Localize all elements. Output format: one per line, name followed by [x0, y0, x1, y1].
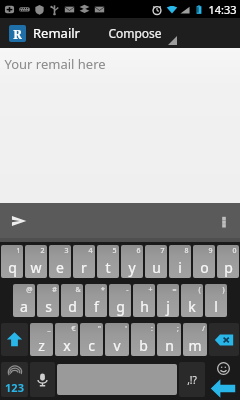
staticText: o: [200, 258, 209, 277]
staticText: s: [45, 297, 52, 316]
staticText: z: [38, 336, 45, 355]
button[interactable]: ': [105, 323, 129, 356]
staticText: 3: [64, 246, 69, 256]
staticText: 0: [232, 246, 237, 256]
button[interactable]: Send: [6, 208, 32, 234]
staticText: ,!?: [187, 373, 197, 387]
staticText: ): [222, 285, 225, 295]
button[interactable]: Enter: [206, 377, 240, 400]
staticText: x: [63, 336, 71, 355]
button[interactable]: 3: [49, 245, 71, 278]
staticText: ": [98, 324, 101, 334]
button[interactable]: #: [37, 284, 59, 317]
button[interactable]: Compose: [108, 25, 172, 41]
staticText: f: [94, 297, 99, 316]
staticText: m: [188, 336, 202, 355]
staticText: €: [71, 324, 76, 334]
button[interactable]: Shift: [1, 323, 28, 356]
staticText: d: [68, 297, 77, 316]
staticText: u: [152, 258, 161, 277]
staticText: n: [165, 336, 174, 355]
button[interactable]: 7: [145, 245, 167, 278]
staticText: 5: [112, 246, 117, 256]
button[interactable]: _: [30, 323, 53, 356]
button[interactable]: Your remail here: [0, 48, 240, 203]
staticText: ': [125, 324, 127, 334]
staticText: 2: [40, 246, 45, 256]
button[interactable]: Punctuation: [179, 362, 205, 397]
staticText: c: [88, 336, 95, 355]
staticText: k: [188, 297, 196, 316]
staticText: /: [202, 324, 205, 334]
button[interactable]: 6: [121, 245, 143, 278]
button[interactable]: 5: [97, 245, 119, 278]
button[interactable]: ): [205, 284, 227, 317]
staticText: b: [139, 336, 148, 355]
staticText: p: [224, 258, 233, 277]
staticText: 7: [160, 246, 165, 256]
staticText: _: [47, 324, 51, 334]
button[interactable]: More options: [211, 208, 237, 234]
staticText: r: [81, 258, 87, 277]
staticText: v: [113, 336, 121, 355]
staticText: R: [13, 26, 22, 42]
staticText: (: [198, 285, 201, 295]
button[interactable]: 1: [1, 245, 23, 278]
staticText: a: [20, 297, 28, 316]
staticText: +: [148, 285, 153, 295]
staticText: Remailr: [33, 24, 80, 42]
staticText: h: [140, 297, 149, 316]
staticText: l: [214, 297, 218, 316]
button[interactable]: &: [61, 284, 83, 317]
button[interactable]: -: [109, 284, 131, 317]
button[interactable]: @: [13, 284, 35, 317]
staticText: @: [26, 285, 33, 295]
staticText: Compose: [108, 25, 162, 41]
staticText: e: [56, 258, 64, 277]
staticText: :: [151, 324, 153, 334]
staticText: 8: [184, 246, 189, 256]
button[interactable]: 2: [25, 245, 47, 278]
staticText: y: [128, 258, 136, 277]
staticText: 123: [5, 380, 24, 395]
staticText: 1: [16, 246, 21, 256]
staticText: #: [52, 285, 57, 295]
staticText: -: [126, 285, 129, 295]
button[interactable]: R: [9, 24, 80, 42]
button[interactable]: :: [131, 323, 155, 356]
button[interactable]: Numbers and symbols: [1, 362, 28, 397]
staticText: =: [172, 285, 177, 295]
button[interactable]: Emoji: [206, 359, 240, 377]
button[interactable]: 4: [73, 245, 95, 278]
button[interactable]: =: [157, 284, 179, 317]
staticText: i: [178, 258, 182, 277]
button[interactable]: 8: [169, 245, 191, 278]
button[interactable]: 9: [193, 245, 215, 278]
staticText: &: [75, 285, 81, 295]
staticText: ;: [177, 324, 179, 334]
button[interactable]: ;: [157, 323, 181, 356]
staticText: 14:33: [208, 2, 237, 17]
staticText: q: [8, 258, 17, 277]
button[interactable]: +: [133, 284, 155, 317]
staticText: j: [166, 297, 170, 316]
staticText: w: [30, 258, 42, 277]
staticText: Your remail here: [4, 55, 106, 73]
button[interactable]: (: [181, 284, 203, 317]
staticText: 4: [88, 246, 93, 256]
button[interactable]: Backspace: [209, 323, 239, 356]
button[interactable]: €: [55, 323, 78, 356]
staticText: g: [116, 297, 125, 316]
staticText: *: [101, 285, 105, 295]
button[interactable]: Voice input: [30, 362, 55, 397]
staticText: 6: [136, 246, 141, 256]
button[interactable]: 0: [217, 245, 239, 278]
button[interactable]: /: [183, 323, 207, 356]
button[interactable]: ": [80, 323, 103, 356]
staticText: 9: [208, 246, 213, 256]
staticText: t: [105, 258, 111, 277]
button[interactable]: *: [85, 284, 107, 317]
